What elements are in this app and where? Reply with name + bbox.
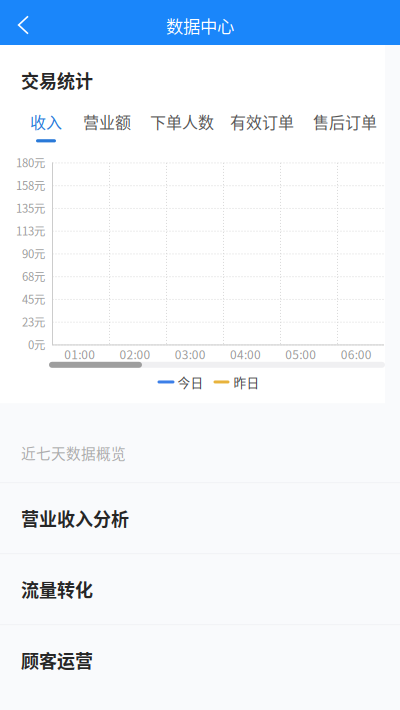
button[interactable]: 有效订单 — [230, 110, 294, 142]
staticText: 05:00 — [285, 345, 316, 363]
staticText: 今日 — [177, 373, 203, 391]
staticText: 顾客运营 — [21, 647, 93, 673]
staticText: 营业额 — [83, 110, 131, 133]
staticText: 近七天数据概览 — [21, 442, 126, 463]
button[interactable]: 下单人数 — [150, 110, 214, 142]
button[interactable]: 返回 — [0, 0, 48, 45]
staticText: 有效订单 — [230, 110, 294, 133]
staticText: 90元 — [22, 245, 45, 262]
staticText: 180元 — [16, 154, 45, 171]
staticText: 03:00 — [175, 345, 206, 363]
button[interactable]: 营业收入分析 — [0, 482, 400, 553]
staticText: 下单人数 — [150, 110, 214, 133]
staticText: 交易统计 — [21, 67, 93, 93]
button[interactable]: 售后订单 — [313, 110, 377, 142]
staticText: 45元 — [22, 291, 45, 307]
staticText: 0元 — [28, 336, 45, 353]
staticText: 113元 — [16, 222, 45, 239]
button[interactable]: 流量转化 — [0, 553, 400, 624]
button[interactable]: 顾客运营 — [0, 624, 400, 695]
button[interactable]: 收入 — [30, 110, 62, 142]
staticText: 23元 — [22, 313, 45, 330]
staticText: 01:00 — [64, 345, 95, 363]
staticText: 收入 — [30, 110, 62, 133]
staticText: 数据中心 — [166, 13, 234, 38]
staticText: 68元 — [22, 268, 45, 284]
staticText: 营业收入分析 — [21, 505, 129, 531]
staticText: 02:00 — [119, 345, 150, 363]
button[interactable]: 营业额 — [83, 110, 131, 142]
staticText: 06:00 — [341, 345, 372, 363]
staticText: 昨日 — [233, 373, 259, 391]
staticText: 流量转化 — [21, 576, 93, 602]
staticText: 04:00 — [230, 345, 261, 363]
staticText: 158元 — [16, 177, 45, 193]
staticText: 售后订单 — [313, 110, 377, 133]
staticText: 135元 — [16, 200, 45, 216]
